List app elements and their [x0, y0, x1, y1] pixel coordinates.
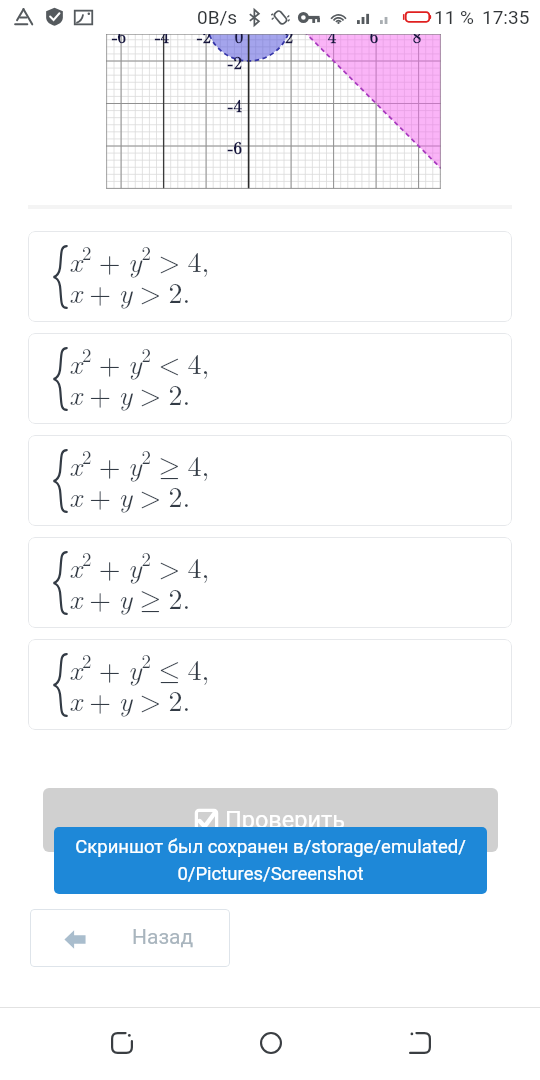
- button[interactable]: x2 + y2 < 4,: [28, 333, 512, 424]
- staticText: 2: [269, 34, 309, 48]
- staticText: x2 + y2 > 4,: [69, 239, 210, 280]
- staticText: 6: [354, 34, 394, 48]
- staticText: x + y ≥ 2.: [69, 577, 191, 617]
- staticText: 8: [397, 34, 437, 48]
- button[interactable]: x2 + y2 > 4,: [28, 537, 512, 628]
- staticText: -4: [142, 34, 182, 48]
- staticText: -6: [99, 34, 139, 48]
- staticText: x2 + y2 ≥ 4,: [69, 443, 210, 484]
- staticText: 17:35: [482, 6, 530, 28]
- button[interactable]: Назад: [30, 909, 230, 967]
- button[interactable]: Проверить: [43, 788, 498, 852]
- button[interactable]: Back: [88, 1009, 156, 1077]
- staticText: x2 + y2 < 4,: [69, 341, 210, 382]
- staticText: Скриншот был сохранен в/storage/emulated…: [75, 836, 466, 885]
- button[interactable]: Home: [237, 1009, 305, 1077]
- staticText: 11 %: [434, 6, 474, 28]
- staticText: Проверить: [225, 806, 346, 834]
- staticText: x + y > 2.: [69, 679, 191, 719]
- staticText: x + y > 2.: [69, 475, 191, 515]
- staticText: -2: [184, 34, 224, 48]
- staticText: x2 + y2 > 4,: [69, 545, 210, 586]
- button[interactable]: Recents: [386, 1009, 454, 1077]
- staticText: Назад: [132, 925, 194, 950]
- staticText: x2 + y2 ≤ 4,: [69, 647, 210, 688]
- staticText: -2: [210, 50, 242, 74]
- button[interactable]: x2 + y2 ≥ 4,: [28, 435, 512, 526]
- button[interactable]: x2 + y2 > 4,: [28, 231, 512, 322]
- staticText: 0: [219, 34, 259, 48]
- staticText: 4: [312, 34, 352, 48]
- staticText: 0B/s: [197, 6, 238, 28]
- staticText: x + y > 2.: [69, 373, 191, 413]
- staticText: x + y > 2.: [69, 271, 191, 311]
- staticText: -4: [210, 93, 242, 117]
- button[interactable]: x2 + y2 ≤ 4,: [28, 639, 512, 730]
- staticText: -6: [210, 135, 242, 159]
